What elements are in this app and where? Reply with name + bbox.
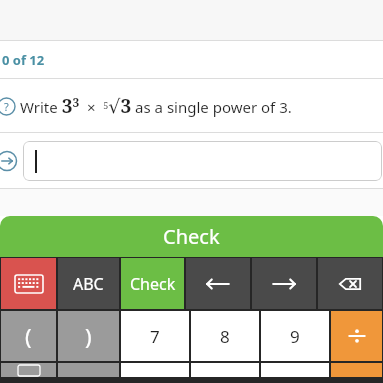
- button[interactable]: 0 of 12: [0, 41, 383, 78]
- button[interactable]: Check: [121, 258, 184, 309]
- button[interactable]: Keyboard: [1, 258, 56, 309]
- button[interactable]: 8: [191, 311, 259, 361]
- button[interactable]: Backspace: [318, 258, 382, 309]
- staticText: ABC: [73, 273, 104, 295]
- staticText: Write 33 × 5√3 as a single power of 3.: [20, 93, 292, 119]
- button[interactable]: 9: [261, 311, 329, 361]
- staticText: 0 of 12: [2, 51, 45, 69]
- staticText: ): [85, 321, 92, 351]
- staticText: Check: [130, 273, 176, 295]
- button[interactable]: Move left: [186, 258, 250, 309]
- staticText: 8: [220, 325, 230, 348]
- button[interactable]: ABC: [58, 258, 119, 309]
- button[interactable]: [23, 141, 382, 181]
- staticText: Check: [163, 223, 220, 250]
- button[interactable]: (: [1, 311, 56, 361]
- staticText: (: [25, 321, 32, 351]
- staticText: 7: [150, 325, 160, 348]
- staticText: 9: [290, 325, 300, 348]
- button[interactable]: Keyboard layout: [1, 363, 56, 377]
- staticText: ?: [4, 99, 9, 114]
- button[interactable]: 7: [121, 311, 189, 361]
- button[interactable]: Divide: [331, 311, 382, 361]
- button[interactable]: Help: [0, 95, 17, 117]
- button[interactable]: Move right: [252, 258, 316, 309]
- button[interactable]: ): [58, 311, 119, 361]
- button[interactable]: Submit answer: [0, 149, 19, 173]
- button[interactable]: Check: [0, 216, 383, 257]
